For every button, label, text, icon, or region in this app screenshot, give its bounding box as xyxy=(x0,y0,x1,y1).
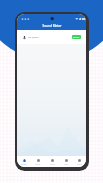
button[interactable]: More xyxy=(73,156,86,167)
button[interactable]: Stats xyxy=(45,156,59,167)
staticText: More xyxy=(77,163,82,166)
staticText: START xyxy=(73,36,80,39)
staticText: Home xyxy=(21,163,27,166)
staticText: Meter xyxy=(35,163,41,166)
button[interactable]: Logs xyxy=(59,156,73,167)
staticText: On-Queue xyxy=(28,36,39,39)
button[interactable]: Home xyxy=(17,156,31,167)
staticText: Sound Meter xyxy=(42,24,62,28)
staticText: Logs xyxy=(64,163,69,166)
button[interactable]: Meter xyxy=(31,156,45,167)
button[interactable]: On-Queue xyxy=(17,30,86,44)
button[interactable]: START xyxy=(72,35,81,39)
staticText: Stats xyxy=(50,163,55,166)
